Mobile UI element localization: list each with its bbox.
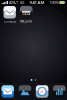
- button[interactable]: Safari: [36, 85, 48, 98]
- staticText: Contacts: [4, 20, 16, 23]
- button[interactable]: Photos: [19, 85, 31, 98]
- staticText: 100%: [49, 0, 58, 5]
- button[interactable]: Music: [53, 85, 65, 98]
- staticText: MTL Jailb: [20, 20, 32, 23]
- staticText: AT&T: [9, 0, 18, 5]
- staticText: 3G: [19, 0, 24, 5]
- staticText: 9:41 AM: [29, 0, 44, 5]
- button[interactable]: MTL Jailb: [18, 6, 34, 23]
- button[interactable]: Contacts: [1, 6, 18, 23]
- button[interactable]: Mail: [1, 85, 14, 98]
